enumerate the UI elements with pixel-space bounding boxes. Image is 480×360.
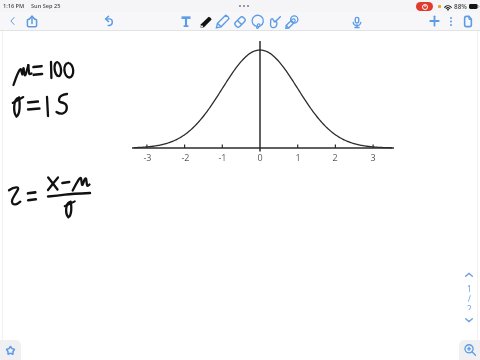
staticText: 88% (454, 2, 467, 11)
staticText: ∕ (468, 294, 471, 303)
button[interactable]: Zoom (459, 340, 480, 360)
staticText: 1 (467, 283, 472, 294)
button[interactable]: Highlighter (214, 14, 230, 30)
staticText: 1 (295, 151, 301, 163)
button[interactable]: Hand (267, 14, 283, 30)
staticText: Sun Sep 25 (31, 2, 61, 10)
staticText: 3 (370, 151, 376, 163)
staticText: -2 (181, 151, 190, 163)
button[interactable]: Undo (101, 13, 117, 29)
staticText: 2 (332, 151, 338, 163)
button[interactable]: Shapes (284, 14, 300, 30)
staticText: 2 (467, 303, 472, 310)
button[interactable]: Share (24, 13, 40, 29)
button[interactable]: Previous page (462, 268, 476, 282)
button[interactable]: Pen tool (197, 14, 213, 30)
button[interactable]: Record audio (349, 14, 365, 30)
staticText: -1 (218, 151, 227, 163)
button[interactable]: Text tool (178, 13, 194, 29)
button[interactable]: Back (4, 13, 20, 29)
button[interactable]: Pages (460, 13, 476, 29)
button[interactable]: Lasso (250, 14, 266, 30)
button[interactable]: Next page (462, 313, 476, 327)
button[interactable]: Add (426, 13, 442, 29)
button[interactable]: More options (443, 13, 459, 29)
button[interactable]: 1 (462, 283, 476, 310)
staticText: -3 (143, 151, 152, 163)
staticText: 1:16 PM (3, 2, 25, 10)
staticText: 0 (257, 151, 263, 163)
button[interactable]: Favorite (0, 340, 21, 360)
button[interactable]: Eraser (232, 14, 248, 30)
